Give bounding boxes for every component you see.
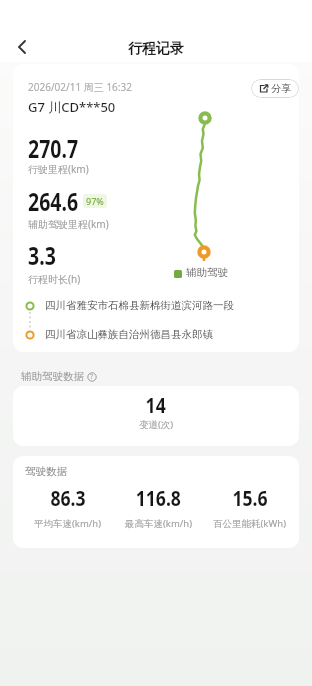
staticText: 86.3 bbox=[50, 482, 86, 512]
staticText: 辅助驾驶数据 bbox=[21, 370, 84, 383]
staticText: 平均车速(km/h) bbox=[34, 517, 102, 530]
staticText: G7 川CD***50 bbox=[28, 98, 116, 116]
staticText: 264.6 bbox=[28, 184, 79, 218]
staticText: 四川省凉山彝族自治州德昌县永郎镇 bbox=[45, 328, 213, 341]
staticText: 3.3 bbox=[28, 238, 56, 272]
staticText: ? bbox=[90, 372, 94, 382]
staticText: 四川省雅安市石棉县新棉街道滨河路一段 bbox=[45, 299, 234, 312]
button[interactable]: 分享 bbox=[251, 79, 299, 98]
staticText: 行程记录 bbox=[128, 40, 184, 58]
staticText: 最高车速(km/h) bbox=[125, 517, 193, 530]
staticText: 百公里能耗(kWh) bbox=[213, 517, 286, 530]
button[interactable] bbox=[8, 33, 36, 61]
staticText: 15.6 bbox=[232, 482, 268, 512]
staticText: 2026/02/11 周三 16:32 bbox=[28, 80, 132, 94]
staticText: 行驶里程(km) bbox=[28, 162, 89, 176]
staticText: 116.8 bbox=[136, 482, 181, 512]
staticText: 14 bbox=[146, 389, 166, 419]
staticText: 97% bbox=[86, 195, 104, 207]
staticText: 驾驶数据 bbox=[25, 465, 67, 478]
staticText: 行程时长(h) bbox=[28, 272, 81, 286]
staticText: 270.7 bbox=[28, 131, 79, 165]
staticText: 分享 bbox=[271, 82, 291, 95]
button[interactable]: ? bbox=[87, 372, 97, 382]
staticText: 辅助驾驶里程(km) bbox=[28, 217, 109, 231]
staticText: 变道(次) bbox=[139, 418, 174, 431]
staticText: 辅助驾驶 bbox=[186, 266, 228, 279]
